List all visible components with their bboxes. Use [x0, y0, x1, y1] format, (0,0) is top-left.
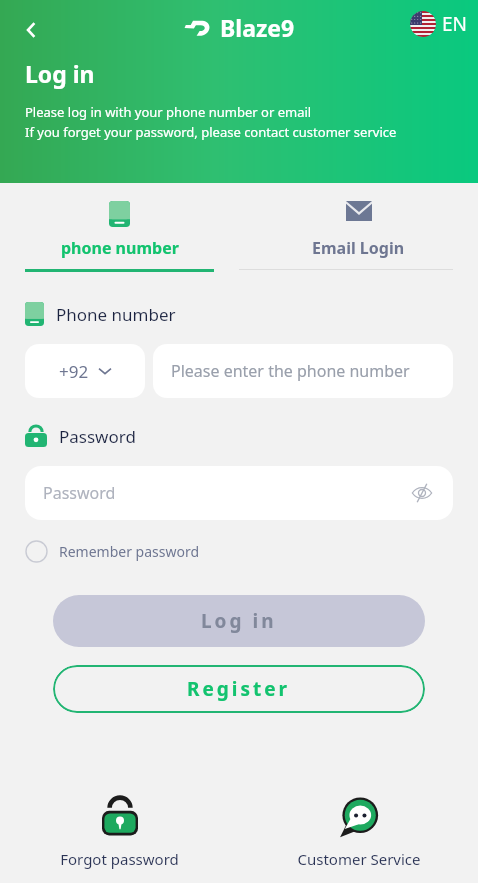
staticText: phone number — [61, 237, 179, 259]
button[interactable]: Back — [14, 12, 50, 48]
staticText: Email Login — [312, 237, 405, 259]
button[interactable]: Register — [53, 665, 425, 713]
button[interactable]: Customer Service — [239, 795, 478, 869]
staticText: Log in — [25, 58, 95, 89]
staticText: If you forget your password, please cont… — [25, 123, 397, 141]
staticText: Please enter the phone number — [171, 360, 410, 382]
button[interactable]: +92 — [25, 344, 145, 398]
staticText: Log in — [201, 608, 277, 634]
button[interactable]: Password — [25, 466, 453, 520]
button[interactable]: Forgot password — [0, 795, 239, 869]
button[interactable]: phone number — [0, 193, 239, 269]
staticText: Password — [43, 482, 409, 504]
staticText: Blaze9 — [220, 12, 295, 43]
button[interactable]: Remember password — [25, 540, 200, 563]
staticText: Register — [187, 676, 291, 702]
button[interactable]: Email Login — [239, 193, 478, 269]
staticText: Remember password — [59, 542, 200, 561]
staticText: Customer Service — [297, 849, 421, 869]
button[interactable]: Log in — [53, 595, 425, 647]
staticText: Password — [59, 425, 136, 448]
staticText: Phone number — [56, 303, 176, 326]
staticText: +92 — [59, 360, 89, 383]
button[interactable]: EN — [410, 11, 468, 37]
staticText: Please log in with your phone number or … — [25, 103, 312, 121]
button[interactable]: Please enter the phone number — [153, 344, 453, 398]
staticText: Forgot password — [60, 849, 179, 869]
staticText: EN — [442, 11, 468, 37]
button[interactable]: Show password — [409, 480, 435, 506]
